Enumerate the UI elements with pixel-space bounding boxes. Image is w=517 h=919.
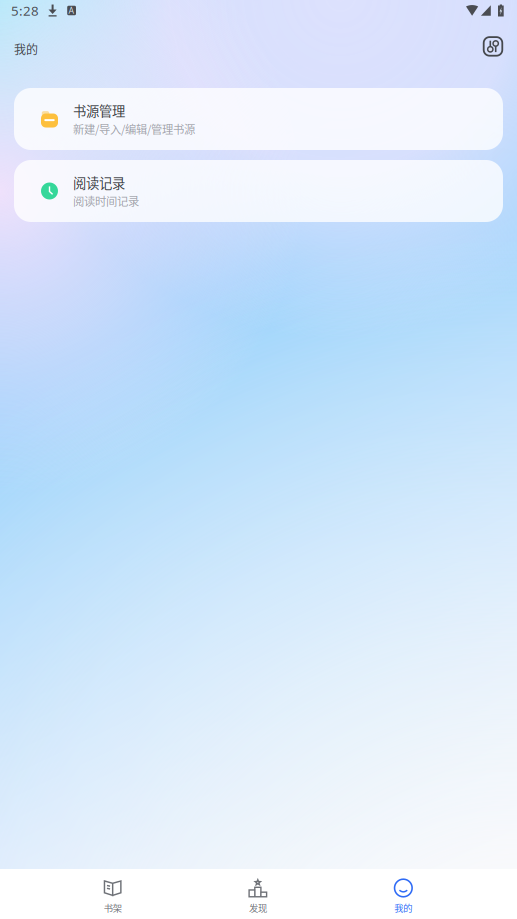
staticText: 发现 (249, 901, 267, 914)
staticText: A (69, 5, 75, 16)
button[interactable]: 设置 (475, 31, 511, 67)
button[interactable]: 书架 (40, 869, 185, 919)
button[interactable]: 书源管理 (14, 88, 503, 150)
button[interactable]: 阅读记录 (14, 160, 503, 222)
staticText: 新建/导入/编辑/管理书源 (73, 121, 195, 137)
staticText: 书架 (104, 901, 122, 914)
staticText: 我的 (14, 40, 38, 58)
button[interactable]: 我的 (331, 869, 476, 919)
staticText: 我的 (394, 901, 412, 914)
staticText: 阅读记录 (73, 173, 125, 192)
staticText: 阅读时间记录 (73, 193, 139, 209)
staticText: 5:28 (11, 1, 39, 20)
staticText: 书源管理 (73, 101, 125, 120)
button[interactable]: 发现 (185, 869, 331, 919)
